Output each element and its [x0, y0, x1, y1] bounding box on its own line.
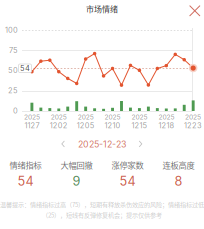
staticText: 1218: [158, 121, 174, 130]
staticText: 2025: [105, 113, 121, 121]
staticText: 情绪指标: [9, 159, 41, 171]
button[interactable]: 上一日: [61, 140, 66, 148]
button[interactable]: 关闭: [184, 0, 204, 20]
staticText: 54: [119, 173, 135, 189]
staticText: 2025: [158, 113, 174, 121]
staticText: 9: [72, 173, 80, 189]
staticText: 涨停家数: [111, 159, 143, 171]
staticText: 市场情绪: [86, 3, 118, 15]
staticText: 2025: [51, 113, 67, 121]
staticText: 25: [8, 86, 18, 95]
staticText: 温馨提示：情绪指标过高（75），短期有释放杀伤效应的风险；情绪指标过低: [0, 200, 204, 209]
staticText: 1127: [24, 121, 39, 130]
staticText: 2025: [78, 113, 94, 121]
staticText: 连板高度: [162, 159, 194, 171]
staticText: 1210: [105, 121, 121, 130]
staticText: 2025: [131, 113, 147, 121]
staticText: 大幅回撤: [60, 159, 92, 171]
staticText: （25），短线有反弹修复机会；提示仅供参考: [42, 210, 162, 219]
staticText: 75: [9, 46, 18, 55]
staticText: 100: [5, 25, 18, 34]
staticText: 8: [174, 173, 182, 189]
staticText: 54: [20, 64, 30, 73]
staticText: 1215: [131, 121, 147, 130]
button[interactable]: 下一日: [138, 140, 143, 148]
staticText: 54: [17, 173, 33, 189]
staticText: 1223: [184, 121, 202, 130]
staticText: 2025: [24, 113, 40, 121]
staticText: 2025: [185, 113, 201, 121]
staticText: 50: [8, 66, 18, 75]
staticText: 0: [13, 106, 18, 115]
staticText: 1205: [77, 121, 95, 130]
staticText: 1202: [50, 121, 68, 130]
staticText: 2025-12-23: [78, 139, 126, 150]
